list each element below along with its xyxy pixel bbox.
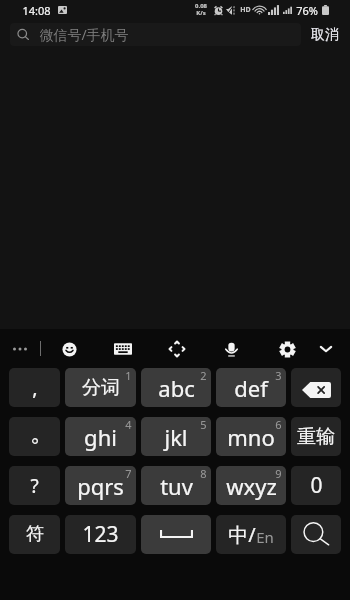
staticText: ? (30, 473, 39, 499)
staticText: HD (240, 5, 251, 15)
button[interactable]: ? (9, 466, 60, 505)
button[interactable]: ghi (65, 417, 136, 456)
staticText: abc (158, 373, 195, 403)
staticText: 0.08 (195, 2, 207, 10)
button[interactable]: 取消 (303, 23, 347, 46)
button[interactable]: Voice input (218, 336, 244, 362)
staticText: wxyz (226, 471, 277, 501)
staticText: 中/ (228, 521, 256, 548)
staticText: 3 (275, 368, 282, 383)
staticText: mno (227, 422, 275, 452)
staticText: , (32, 374, 38, 401)
staticText: tuv (160, 471, 193, 501)
button[interactable]: Hide keyboard (313, 336, 339, 362)
staticText: 4 (125, 417, 132, 432)
staticText: 1 (125, 368, 132, 383)
button[interactable]: Emoji (56, 336, 82, 362)
button[interactable]: wxyz (216, 466, 286, 505)
staticText: pqrs (77, 471, 124, 501)
staticText: 取消 (311, 26, 339, 44)
staticText: 14:08 (22, 3, 51, 18)
button[interactable]: mno (216, 417, 286, 456)
button[interactable]: Search (291, 515, 341, 554)
button[interactable]: More options (7, 336, 33, 362)
button[interactable]: , (9, 368, 60, 407)
staticText: 分词 (82, 376, 120, 400)
staticText: 2 (200, 368, 207, 383)
staticText: 5 (200, 417, 207, 432)
staticText: def (234, 373, 268, 403)
button[interactable]: 微信号/手机号 (10, 23, 301, 46)
staticText: 9 (275, 466, 282, 481)
button[interactable]: abc (141, 368, 211, 407)
staticText: 重输 (297, 425, 335, 449)
staticText: En (256, 527, 274, 547)
staticText: ghi (84, 422, 117, 452)
staticText: 8 (200, 466, 207, 481)
button[interactable]: 0 (291, 466, 341, 505)
staticText: K/s (196, 9, 206, 17)
button[interactable]: pqrs (65, 466, 136, 505)
staticText: 0 (310, 471, 323, 500)
staticText: 123 (82, 520, 119, 549)
button[interactable]: Delete (291, 368, 341, 407)
button[interactable]: jkl (141, 417, 211, 456)
button[interactable]: Switch keyboard (110, 336, 136, 362)
button[interactable]: 中/ (216, 515, 286, 554)
button[interactable]: tuv (141, 466, 211, 505)
button[interactable]: 符 (9, 515, 60, 554)
button[interactable]: 123 (65, 515, 136, 554)
button[interactable]: Space (141, 515, 211, 554)
button[interactable]: Period (9, 417, 60, 456)
staticText: jkl (164, 422, 188, 452)
staticText: 微信号/手机号 (39, 25, 129, 44)
staticText: 符 (26, 523, 44, 546)
button[interactable]: 重输 (291, 417, 341, 456)
button[interactable]: Move cursor (164, 336, 190, 362)
button[interactable]: 分词 (65, 368, 136, 407)
button[interactable]: Settings (274, 336, 300, 362)
staticText: 6 (275, 417, 282, 432)
staticText: 76% (296, 3, 318, 18)
staticText: 7 (125, 466, 132, 481)
button[interactable]: def (216, 368, 286, 407)
